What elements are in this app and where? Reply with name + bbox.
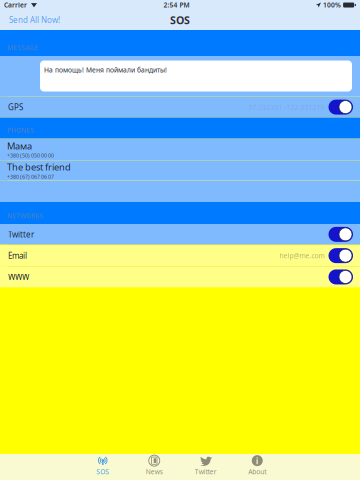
staticText: Twitter <box>195 467 217 476</box>
staticText: About <box>248 467 266 476</box>
staticText: Send All Now! <box>9 15 60 25</box>
staticText: The best friend <box>7 161 71 173</box>
button[interactable]: Toggle <box>328 269 353 284</box>
button[interactable]: Toggle <box>328 100 353 115</box>
staticText: На помощь! Меня поймали бандиты! <box>44 65 167 74</box>
staticText: MESSAGE <box>7 43 38 52</box>
button[interactable]: Мама <box>0 139 360 160</box>
button[interactable]: Twitter <box>180 454 231 480</box>
button[interactable]: Send All Now! <box>0 10 66 30</box>
staticText: PHONES <box>7 126 34 135</box>
staticText: SOS <box>170 13 190 27</box>
staticText: NETWORKS <box>7 211 43 220</box>
button[interactable]: Toggle <box>328 227 353 242</box>
staticText: Email <box>8 250 27 261</box>
staticText: Мама <box>7 140 32 152</box>
button[interactable]: SOS <box>77 454 128 480</box>
staticText: 2:54 PM <box>163 1 189 9</box>
staticText: +380 (67) 067 06 07 <box>7 173 54 180</box>
button[interactable]: i <box>231 454 283 480</box>
button[interactable]: The best friend <box>0 161 360 180</box>
staticText: Carrier <box>4 1 27 9</box>
staticText: help@me.com <box>279 251 324 260</box>
staticText: +380 (50) 050 00 00 <box>7 152 54 159</box>
staticText: WWW <box>8 272 29 282</box>
staticText: GPS <box>8 102 23 112</box>
button[interactable]: News <box>128 454 180 480</box>
staticText: 37.332331 -122.031219 <box>248 103 324 112</box>
staticText: Twitter <box>8 229 34 240</box>
staticText: SOS <box>96 467 109 476</box>
staticText: News <box>146 467 163 476</box>
button[interactable]: Toggle <box>328 248 353 263</box>
staticText: i <box>256 454 259 467</box>
staticText: 100% <box>323 1 341 9</box>
